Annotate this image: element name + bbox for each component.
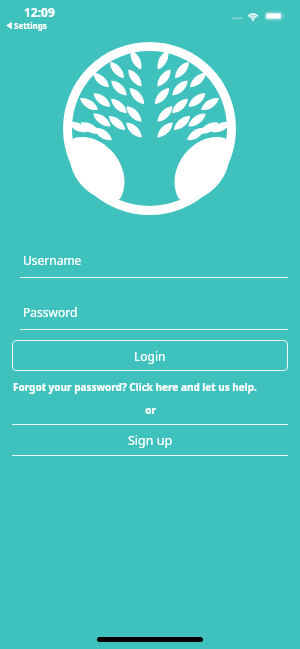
staticText: Sign up [128,432,173,449]
button[interactable]: Sign up [0,424,300,456]
button[interactable]: Login [12,340,288,371]
button[interactable]: Back to Settings [6,20,47,31]
button[interactable]: Password [0,304,300,337]
staticText: Login [134,348,166,364]
staticText: or [145,403,156,417]
staticText: Forgot your password? Click here and let… [13,380,257,394]
staticText: Username [23,252,82,268]
staticText: Settings [14,20,47,31]
staticText: 12:09 [24,4,55,20]
staticText: Password [23,304,78,320]
button[interactable]: Username [0,252,300,285]
button[interactable]: Forgot your password? Click here and let… [0,378,300,395]
